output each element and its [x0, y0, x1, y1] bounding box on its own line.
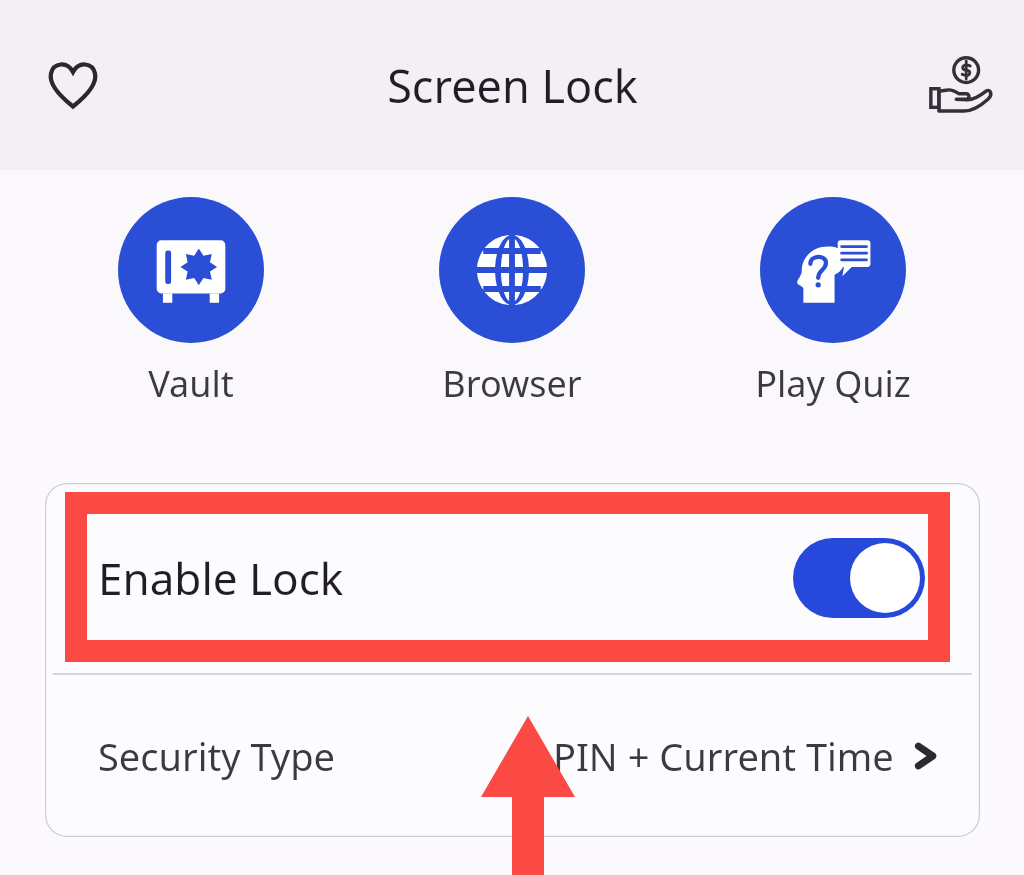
staticText: Browser — [442, 359, 582, 408]
button[interactable]: Enable Lock — [45, 483, 980, 673]
staticText: PIN + Current Time — [553, 730, 894, 782]
button[interactable]: Earn rewards — [918, 43, 1002, 127]
staticText: Security Type — [98, 730, 336, 782]
button[interactable]: Security Type — [45, 675, 980, 837]
button[interactable]: Vault — [61, 197, 321, 408]
button[interactable]: Enable Lock toggle, on — [793, 538, 925, 618]
staticText: Play Quiz — [755, 359, 911, 408]
button[interactable]: Favorites — [34, 46, 112, 124]
button[interactable]: Browser — [382, 197, 642, 408]
button[interactable]: Play Quiz — [703, 197, 963, 408]
staticText: Enable Lock — [98, 548, 344, 608]
staticText: Vault — [148, 359, 234, 408]
staticText: Screen Lock — [387, 55, 638, 116]
